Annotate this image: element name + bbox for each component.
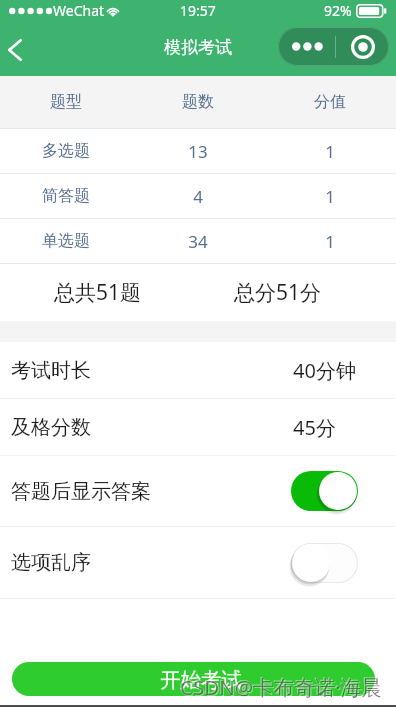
staticText: 简答题 <box>42 186 90 206</box>
staticText: 模拟考试 <box>164 37 232 58</box>
button[interactable]: 答题后显示答案 <box>0 456 396 526</box>
staticText: 45分 <box>293 414 336 441</box>
staticText: 单选题 <box>42 231 90 251</box>
staticText: 4 <box>193 185 203 208</box>
staticText: 开始考试 <box>160 667 242 693</box>
staticText: 题数 <box>182 92 214 112</box>
button[interactable]: Switch off <box>291 543 358 583</box>
staticText: 总分51分 <box>234 278 322 307</box>
staticText: 34 <box>188 230 208 253</box>
staticText: 多选题 <box>42 141 90 161</box>
button[interactable]: 考试时长 <box>0 342 396 398</box>
button[interactable]: 多选题 <box>0 129 396 173</box>
button[interactable]: Switch on <box>291 471 358 511</box>
button[interactable]: More options <box>278 27 335 66</box>
button[interactable]: 开始考试 <box>12 662 375 696</box>
button[interactable]: 选项乱序 <box>0 527 396 598</box>
staticText: 及格分数 <box>11 415 91 440</box>
staticText: CSDN@卡布奇诺·海晨 <box>179 672 381 700</box>
staticText: 总共51题 <box>54 278 142 307</box>
staticText: 19:57 <box>180 1 216 20</box>
staticText: 题型 <box>50 92 82 112</box>
staticText: WeChat <box>53 1 105 20</box>
staticText: CSDN@卡布奇诺·海晨 <box>180 673 382 701</box>
staticText: 1 <box>325 140 335 163</box>
staticText: 92% <box>324 1 352 20</box>
staticText: CSDN@卡布奇诺·海晨 <box>181 674 383 702</box>
staticText: 答题后显示答案 <box>11 479 151 504</box>
button[interactable]: 及格分数 <box>0 399 396 455</box>
staticText: 考试时长 <box>11 358 91 383</box>
button[interactable]: 单选题 <box>0 219 396 263</box>
button[interactable]: 简答题 <box>0 174 396 218</box>
button[interactable]: Close mini program <box>336 27 389 66</box>
staticText: 选项乱序 <box>11 550 91 575</box>
staticText: 1 <box>325 230 335 253</box>
staticText: 分值 <box>314 92 346 112</box>
button[interactable]: Back <box>0 28 37 72</box>
staticText: 13 <box>188 140 208 163</box>
staticText: 1 <box>325 185 335 208</box>
staticText: 40分钟 <box>293 357 356 384</box>
